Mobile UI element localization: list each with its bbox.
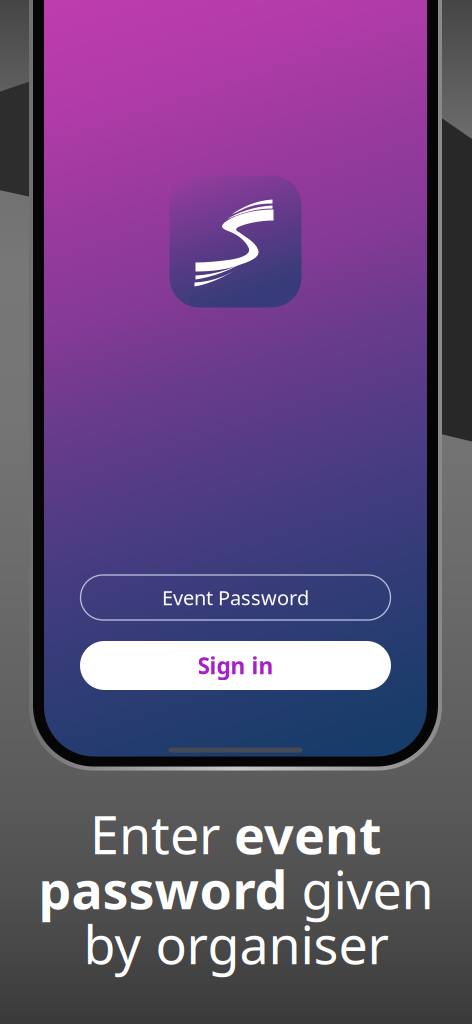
staticText: Enter xyxy=(90,799,234,869)
staticText: event xyxy=(234,799,382,869)
staticText: Sign in xyxy=(197,650,273,680)
staticText: password xyxy=(38,854,287,924)
staticText: given xyxy=(287,854,433,924)
staticText: Event Password xyxy=(162,584,309,611)
staticText: by organiser xyxy=(83,909,388,979)
button[interactable]: Event Password xyxy=(80,575,390,620)
button[interactable]: Sign in xyxy=(80,641,391,690)
